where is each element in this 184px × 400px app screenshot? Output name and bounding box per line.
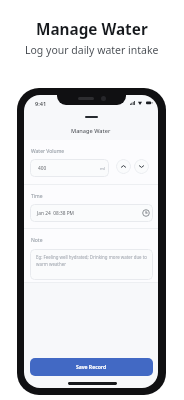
- staticText: ml: [100, 166, 105, 172]
- staticText: Water Volume: [31, 148, 65, 155]
- staticText: Note: [31, 237, 43, 244]
- staticText: Log your daily water intake: [25, 43, 159, 57]
- staticText: Time: [31, 193, 43, 200]
- button[interactable]: Decrease volume: [134, 159, 149, 174]
- button[interactable]: Eg: Feeling well hydrated; Drinking more…: [30, 249, 153, 280]
- staticText: Jan 24 08:38 PM: [37, 210, 74, 217]
- button[interactable]: Jan 24 08:38 PM: [30, 204, 153, 222]
- staticText: 400: [38, 165, 47, 172]
- staticText: 9:41: [35, 100, 47, 108]
- staticText: Manage Water: [71, 127, 111, 135]
- button[interactable]: Increase volume: [116, 159, 131, 174]
- button[interactable]: Save Record: [30, 358, 153, 376]
- button[interactable]: 400: [30, 159, 109, 177]
- staticText: Manage Water: [36, 19, 148, 40]
- staticText: Eg: Feeling well hydrated; Drinking more…: [36, 254, 148, 267]
- other: Pick time: [142, 209, 150, 217]
- staticText: Save Record: [76, 364, 107, 371]
